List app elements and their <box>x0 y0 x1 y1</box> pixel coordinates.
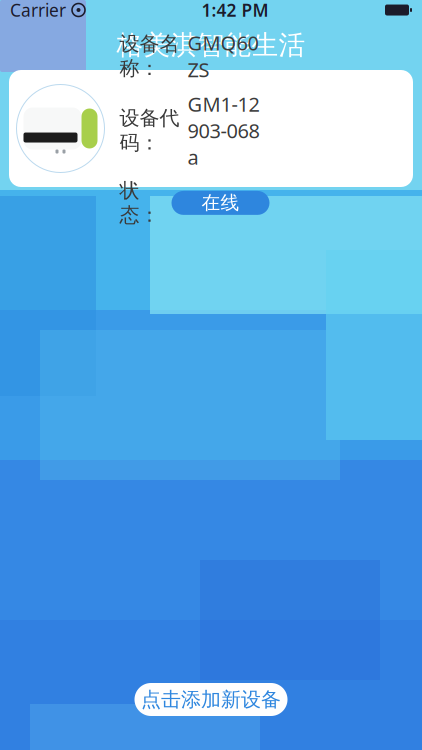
staticText: 1:42 PM <box>201 0 268 21</box>
staticText: 在线 <box>201 191 239 214</box>
staticText: 格美淇智能生活 <box>116 29 305 61</box>
staticText: GMQ60ZS <box>187 29 258 83</box>
staticText: 设备代码： <box>119 106 179 155</box>
staticText: GM1-12903-068a <box>187 91 259 170</box>
staticText: 设备名称： <box>119 31 179 81</box>
staticText: 状 态： <box>119 178 159 227</box>
button[interactable]: 设备名称： <box>9 70 413 187</box>
button[interactable]: 点击添加新设备 <box>134 683 287 716</box>
staticText: Carrier <box>10 0 66 21</box>
staticText: 点击添加新设备 <box>141 687 281 712</box>
